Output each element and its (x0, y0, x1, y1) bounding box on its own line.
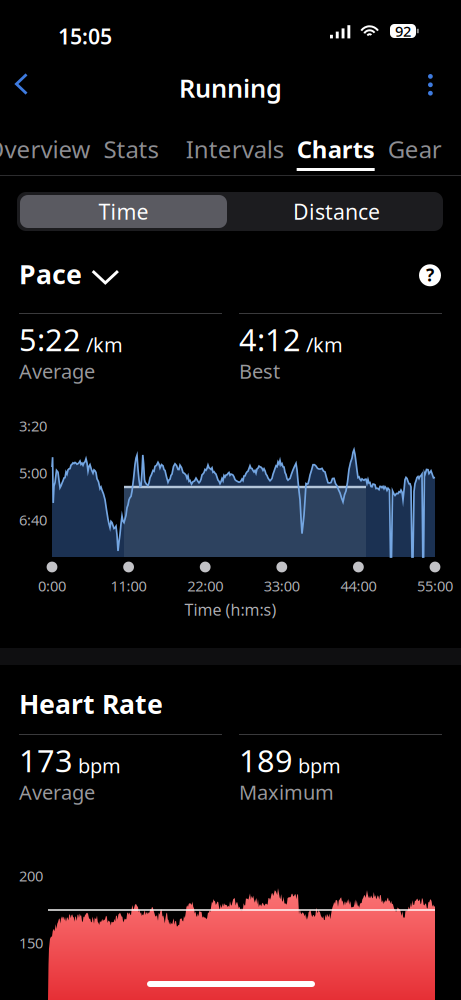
staticText: Average (19, 779, 95, 805)
staticText: 33:00 (264, 576, 300, 595)
button[interactable]: Intervals (186, 117, 284, 175)
button[interactable]: Pace (0, 249, 139, 299)
staticText: 150 (19, 933, 43, 952)
button[interactable]: Overview (0, 117, 90, 175)
staticText: Overview (0, 133, 90, 165)
staticText: 200 (19, 866, 43, 885)
staticText: 5:22 (19, 319, 81, 360)
staticText: Average (19, 358, 95, 384)
staticText: 189 (239, 740, 293, 781)
staticText: /km (86, 331, 123, 358)
staticText: 3:20 (19, 416, 47, 435)
staticText: 0:00 (38, 576, 66, 595)
staticText: ? (426, 263, 434, 286)
staticText: 5:00 (19, 463, 47, 482)
staticText: Running (179, 71, 282, 105)
staticText: Heart Rate (19, 686, 163, 721)
staticText: Intervals (186, 133, 284, 165)
staticText: bpm (298, 752, 341, 779)
button[interactable]: Distance (230, 192, 443, 231)
staticText: 44:00 (340, 576, 376, 595)
staticText: 4:12 (239, 319, 301, 360)
staticText: 15:05 (58, 22, 112, 50)
staticText: 22:00 (187, 576, 223, 595)
staticText: Gear (388, 133, 442, 165)
button[interactable]: Help (399, 249, 461, 289)
button[interactable]: Back (0, 60, 45, 108)
button[interactable]: Time (17, 192, 230, 231)
staticText: Charts (297, 133, 375, 165)
staticText: 11:00 (111, 576, 147, 595)
button[interactable]: Charts (297, 117, 375, 175)
staticText: Distance (293, 197, 380, 226)
staticText: 6:40 (19, 510, 47, 529)
staticText: Stats (103, 133, 158, 165)
staticText: 55:00 (417, 576, 453, 595)
button[interactable]: Gear (388, 117, 457, 175)
staticText: Best (239, 358, 280, 384)
staticText: Time (h:m:s) (184, 599, 276, 620)
staticText: bpm (78, 752, 121, 779)
staticText: Maximum (239, 779, 334, 805)
staticText: Time (98, 197, 148, 226)
staticText: /km (306, 331, 343, 358)
button[interactable]: More options (410, 60, 461, 109)
button[interactable]: Stats (103, 117, 173, 175)
staticText: 173 (19, 740, 73, 781)
staticText: 92 (395, 21, 411, 41)
staticText: Pace (19, 256, 82, 292)
